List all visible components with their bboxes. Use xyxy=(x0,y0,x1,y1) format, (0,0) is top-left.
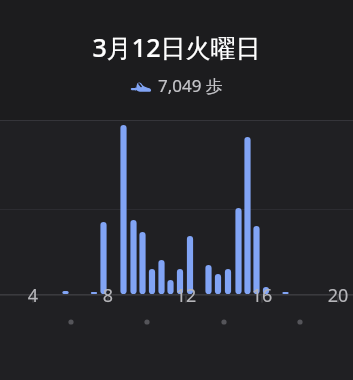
staticText: 3月12日火曜日 xyxy=(0,30,353,64)
staticText: 8 xyxy=(102,283,114,308)
staticText: 4 xyxy=(27,283,39,308)
staticText: 7,049 歩 xyxy=(158,74,223,97)
button[interactable]: Steps xyxy=(0,74,353,97)
button[interactable]: 4 xyxy=(0,97,353,380)
staticText: 16 xyxy=(250,283,274,308)
other: Steps xyxy=(131,75,153,97)
staticText: 12 xyxy=(174,283,198,308)
staticText: 20 xyxy=(326,283,350,308)
